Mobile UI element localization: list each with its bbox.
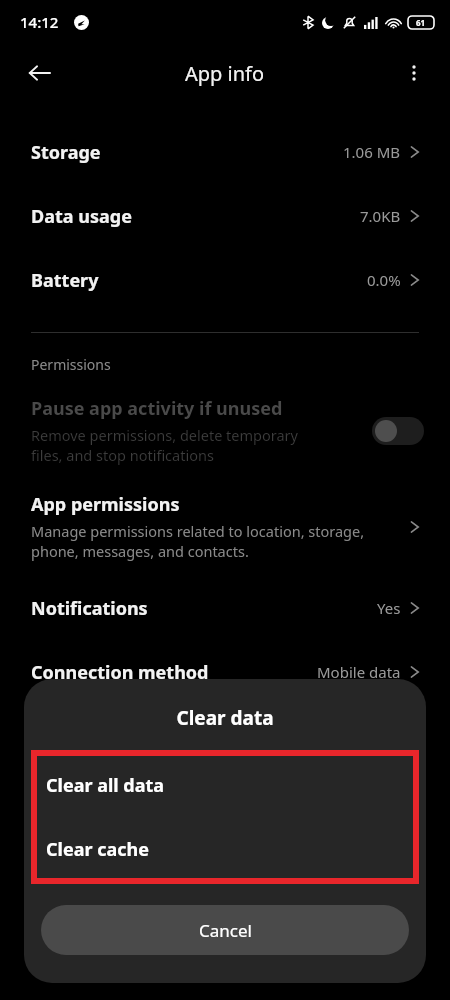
staticText: Notifications — [31, 596, 377, 621]
staticText: Clear all data — [46, 773, 165, 798]
button[interactable]: More options — [390, 49, 438, 97]
staticText: App permissions — [31, 492, 180, 517]
staticText: 61 — [416, 17, 426, 28]
staticText: App info — [185, 60, 265, 87]
staticText: 7.0KB — [360, 206, 401, 226]
button[interactable]: Clear all data — [34, 753, 416, 817]
staticText: 1.06 MB — [343, 142, 401, 162]
button[interactable]: Connection method — [0, 640, 450, 704]
button[interactable]: Battery — [0, 248, 450, 312]
button[interactable]: Data usage — [0, 184, 450, 248]
button[interactable]: Cancel — [41, 905, 409, 955]
staticText: Clear cache — [46, 837, 149, 862]
staticText: 0.0% — [367, 270, 401, 290]
staticText: Connection method — [31, 660, 317, 685]
staticText: Cancel — [199, 919, 252, 942]
staticText: Yes — [377, 598, 401, 618]
button[interactable]: Storage — [0, 120, 450, 184]
staticText: Remove permissions, delete temporary fil… — [31, 425, 298, 466]
staticText: 14:12 — [20, 12, 59, 32]
button[interactable]: App permissions — [0, 480, 450, 576]
staticText: Mobile data — [317, 662, 401, 682]
staticText: Storage — [31, 140, 343, 165]
button[interactable]: Back — [16, 49, 64, 97]
staticText: Permissions — [31, 355, 111, 374]
staticText: Pause app activity if unused — [31, 396, 283, 421]
staticText: Data usage — [31, 204, 360, 229]
staticText: Battery — [31, 268, 367, 293]
staticText: Manage permissions related to location, … — [31, 521, 365, 562]
button[interactable]: Notifications — [0, 576, 450, 640]
button[interactable]: Pause app activity toggle — [372, 417, 424, 445]
button[interactable]: Pause app activity if unused — [0, 392, 450, 480]
staticText: Clear data — [24, 705, 426, 731]
button[interactable]: Clear cache — [34, 817, 416, 881]
